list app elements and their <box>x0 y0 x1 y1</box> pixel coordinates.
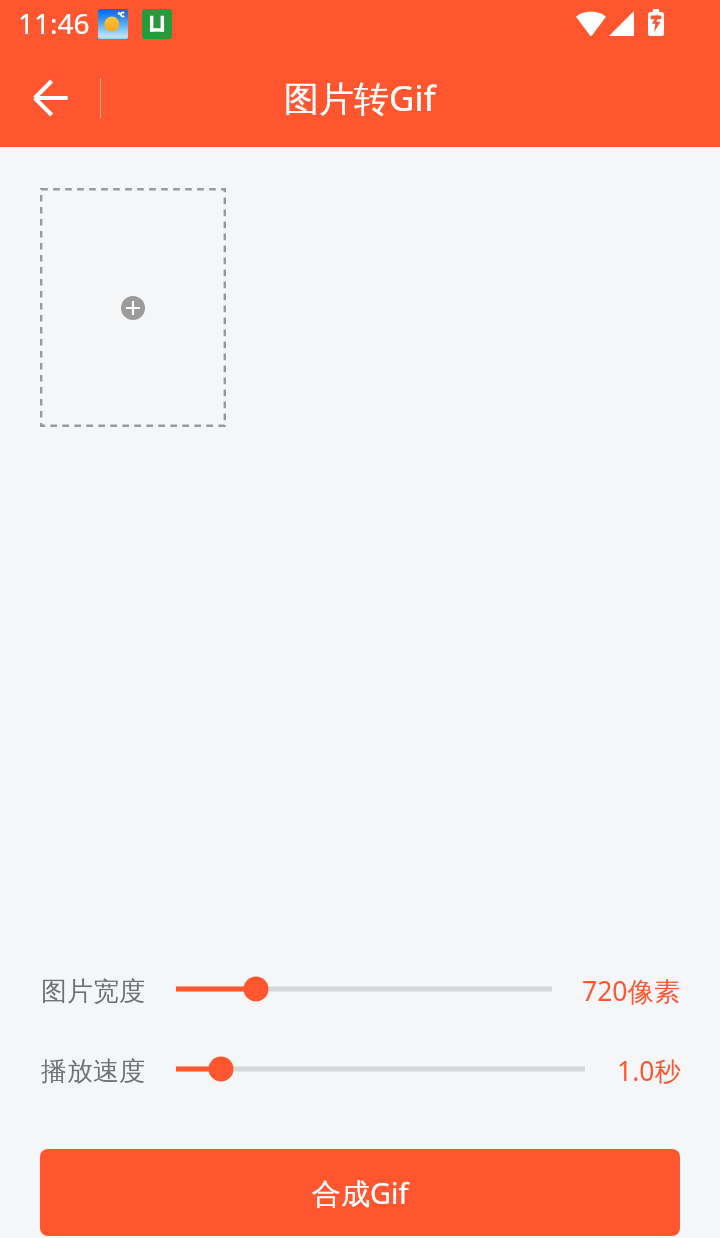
button[interactable]: 图片宽度 <box>0 959 720 1019</box>
other: 图片宽度 slider, 720像素 <box>0 959 720 1019</box>
other: 播放速度 slider, 1.0秒 <box>0 1039 720 1099</box>
staticText: 1.0秒 <box>617 1053 681 1089</box>
button[interactable]: 播放速度 <box>0 1039 720 1099</box>
button[interactable]: 合成Gif <box>40 1149 680 1236</box>
staticText: 720像素 <box>582 973 681 1009</box>
staticText: 11:46 <box>18 4 90 42</box>
staticText: 图片转Gif <box>284 74 436 122</box>
staticText: 图片宽度 <box>41 975 145 1008</box>
staticText: 播放速度 <box>41 1055 145 1088</box>
staticText: 合成Gif <box>312 1173 409 1213</box>
button[interactable]: Add image <box>40 188 226 427</box>
button[interactable]: Back <box>14 57 87 138</box>
